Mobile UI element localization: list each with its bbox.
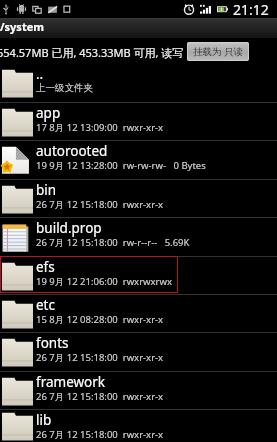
staticText: etc bbox=[36, 296, 55, 314]
staticText: lib bbox=[36, 411, 52, 429]
staticText: 26 7月 12 15:18:00 rwxr-xr-x bbox=[36, 428, 164, 441]
button[interactable]: framework bbox=[0, 372, 277, 409]
staticText: 26 7月 12 15:18:00 rw-r--r-- 5.69K bbox=[36, 236, 190, 249]
button[interactable]: app bbox=[0, 103, 277, 140]
staticText: fonts bbox=[36, 334, 69, 352]
staticText: 15 8月 12 08:28:00 rwxr-xr-x bbox=[36, 313, 164, 326]
staticText: 26 7月 12 15:18:00 rwxr-xr-x bbox=[36, 351, 164, 364]
button[interactable]: etc bbox=[0, 295, 277, 332]
staticText: 21:12 bbox=[233, 0, 269, 18]
staticText: /system bbox=[0, 19, 44, 34]
staticText: 上一级文件夹 bbox=[36, 82, 93, 94]
staticText: efs bbox=[36, 258, 55, 276]
button[interactable]: fonts bbox=[0, 333, 277, 371]
staticText: 19 9月 12 21:06:00 rwxrwxrwx bbox=[36, 275, 172, 288]
button[interactable]: bin bbox=[0, 180, 277, 217]
staticText: autorooted bbox=[36, 142, 108, 160]
button[interactable]: lib bbox=[0, 410, 277, 442]
button[interactable]: autorooted bbox=[0, 141, 277, 179]
button[interactable]: build.prop bbox=[0, 218, 277, 256]
staticText: 26 7月 12 15:18:00 rwxr-xr-x bbox=[36, 198, 164, 211]
staticText: build.prop bbox=[36, 219, 102, 237]
staticText: framework bbox=[36, 373, 106, 391]
staticText: 554.57MB 已用, 453.33MB 可用, 读写 bbox=[0, 45, 184, 60]
staticText: app bbox=[36, 104, 61, 122]
staticText: 19 9月 12 13:28:00 rw-rw-rw- 0 Bytes bbox=[36, 159, 206, 172]
staticText: 17 8月 12 13:09:00 rwxr-xr-x bbox=[36, 121, 164, 134]
button[interactable]: .. bbox=[0, 64, 277, 102]
button[interactable]: efs bbox=[0, 257, 277, 294]
staticText: 26 7月 12 15:18:00 rwxr-xr-x bbox=[36, 390, 164, 403]
staticText: 挂载为 只读 bbox=[193, 45, 243, 58]
staticText: bin bbox=[36, 181, 57, 199]
button[interactable]: 挂载为 只读 bbox=[187, 42, 249, 61]
staticText: .. bbox=[36, 65, 44, 83]
